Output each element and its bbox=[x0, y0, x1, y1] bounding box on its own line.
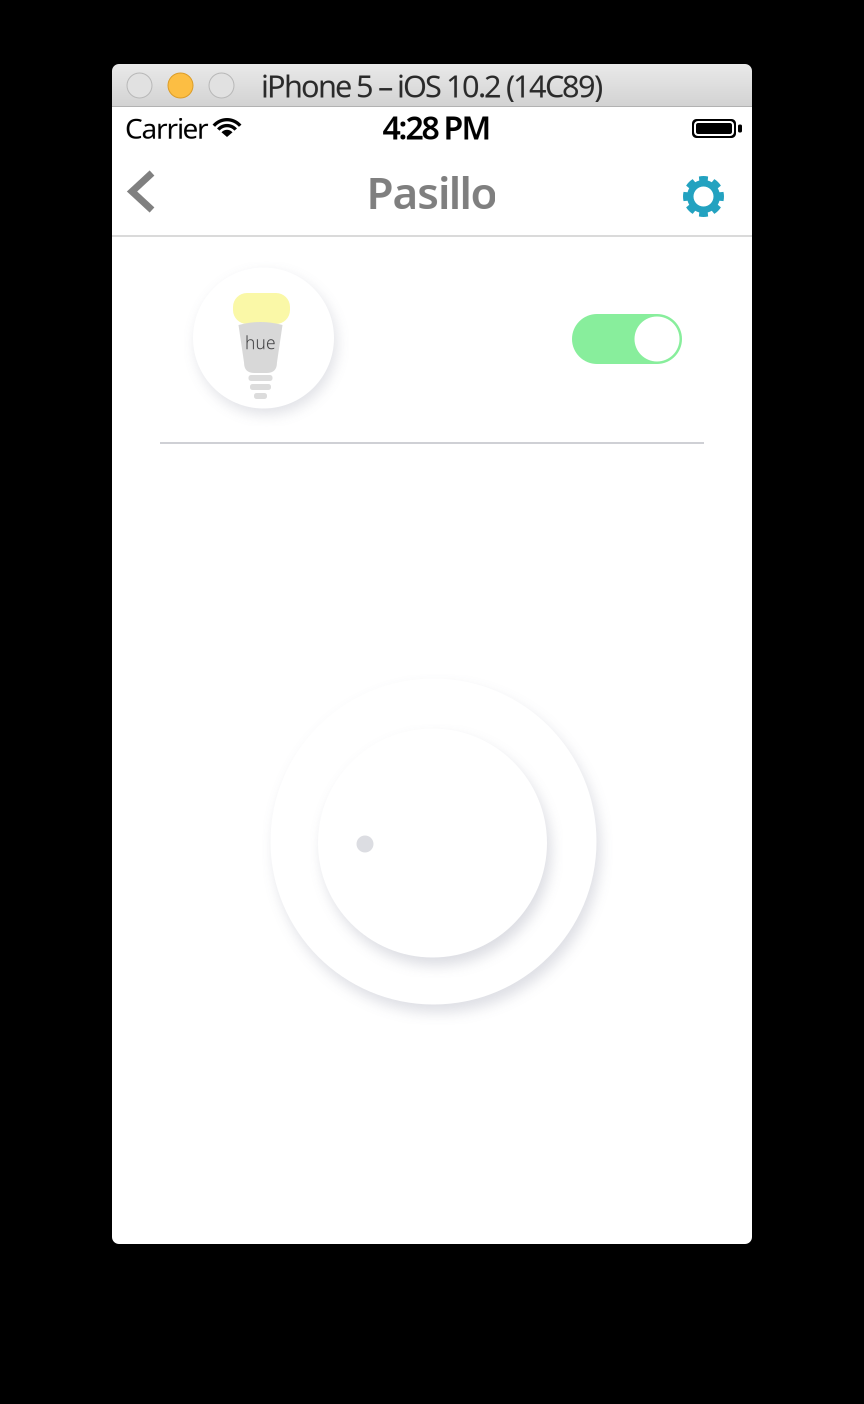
staticText: iPhone 5 – iOS 10.2 (14C89) bbox=[261, 65, 603, 106]
staticText: Pasillo bbox=[367, 163, 497, 221]
button[interactable]: Window control bbox=[168, 73, 193, 98]
button[interactable]: Window control bbox=[209, 73, 234, 98]
button[interactable]: Settings bbox=[656, 147, 752, 235]
staticText: 4:28 PM bbox=[382, 106, 491, 148]
button[interactable]: Light on bbox=[572, 314, 682, 364]
button[interactable]: Back bbox=[112, 147, 180, 235]
button[interactable]: Window control bbox=[127, 73, 152, 98]
staticText: hue bbox=[245, 331, 276, 354]
button[interactable]: Light bbox=[183, 258, 343, 418]
button[interactable]: Brightness bbox=[253, 661, 613, 1021]
staticText: Carrier bbox=[125, 109, 209, 147]
